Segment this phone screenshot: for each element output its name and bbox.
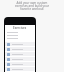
button[interactable]	[5, 62, 35, 66]
button[interactable]	[5, 31, 35, 34]
staticText: Exercises	[13, 26, 27, 30]
button[interactable]	[5, 67, 35, 71]
button[interactable]	[5, 37, 35, 40]
button[interactable]	[5, 42, 35, 46]
button[interactable]	[5, 47, 35, 51]
staticText: Add your own custom exercises and build …	[0, 1, 64, 11]
button[interactable]	[5, 52, 35, 56]
button[interactable]	[5, 34, 35, 37]
button[interactable]	[5, 57, 35, 61]
